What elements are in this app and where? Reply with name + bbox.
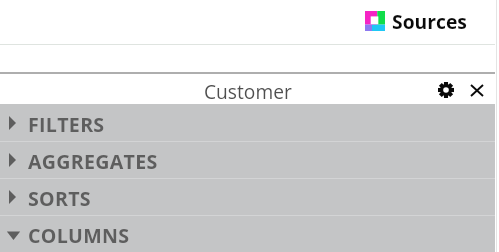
button[interactable]: FILTERS xyxy=(0,104,495,141)
button[interactable]: Sources xyxy=(365,9,467,35)
staticText: AGGREGATES xyxy=(28,148,158,175)
staticText: SORTS xyxy=(28,185,91,212)
staticText: COLUMNS xyxy=(28,222,130,249)
staticText: Customer xyxy=(204,78,292,104)
button[interactable]: SORTS xyxy=(0,178,495,215)
button[interactable]: AGGREGATES xyxy=(0,141,495,178)
button[interactable]: COLUMNS xyxy=(0,215,495,252)
staticText: Sources xyxy=(392,8,467,34)
button[interactable]: Settings xyxy=(431,75,461,105)
button[interactable]: Close xyxy=(462,75,492,105)
staticText: FILTERS xyxy=(28,111,105,138)
